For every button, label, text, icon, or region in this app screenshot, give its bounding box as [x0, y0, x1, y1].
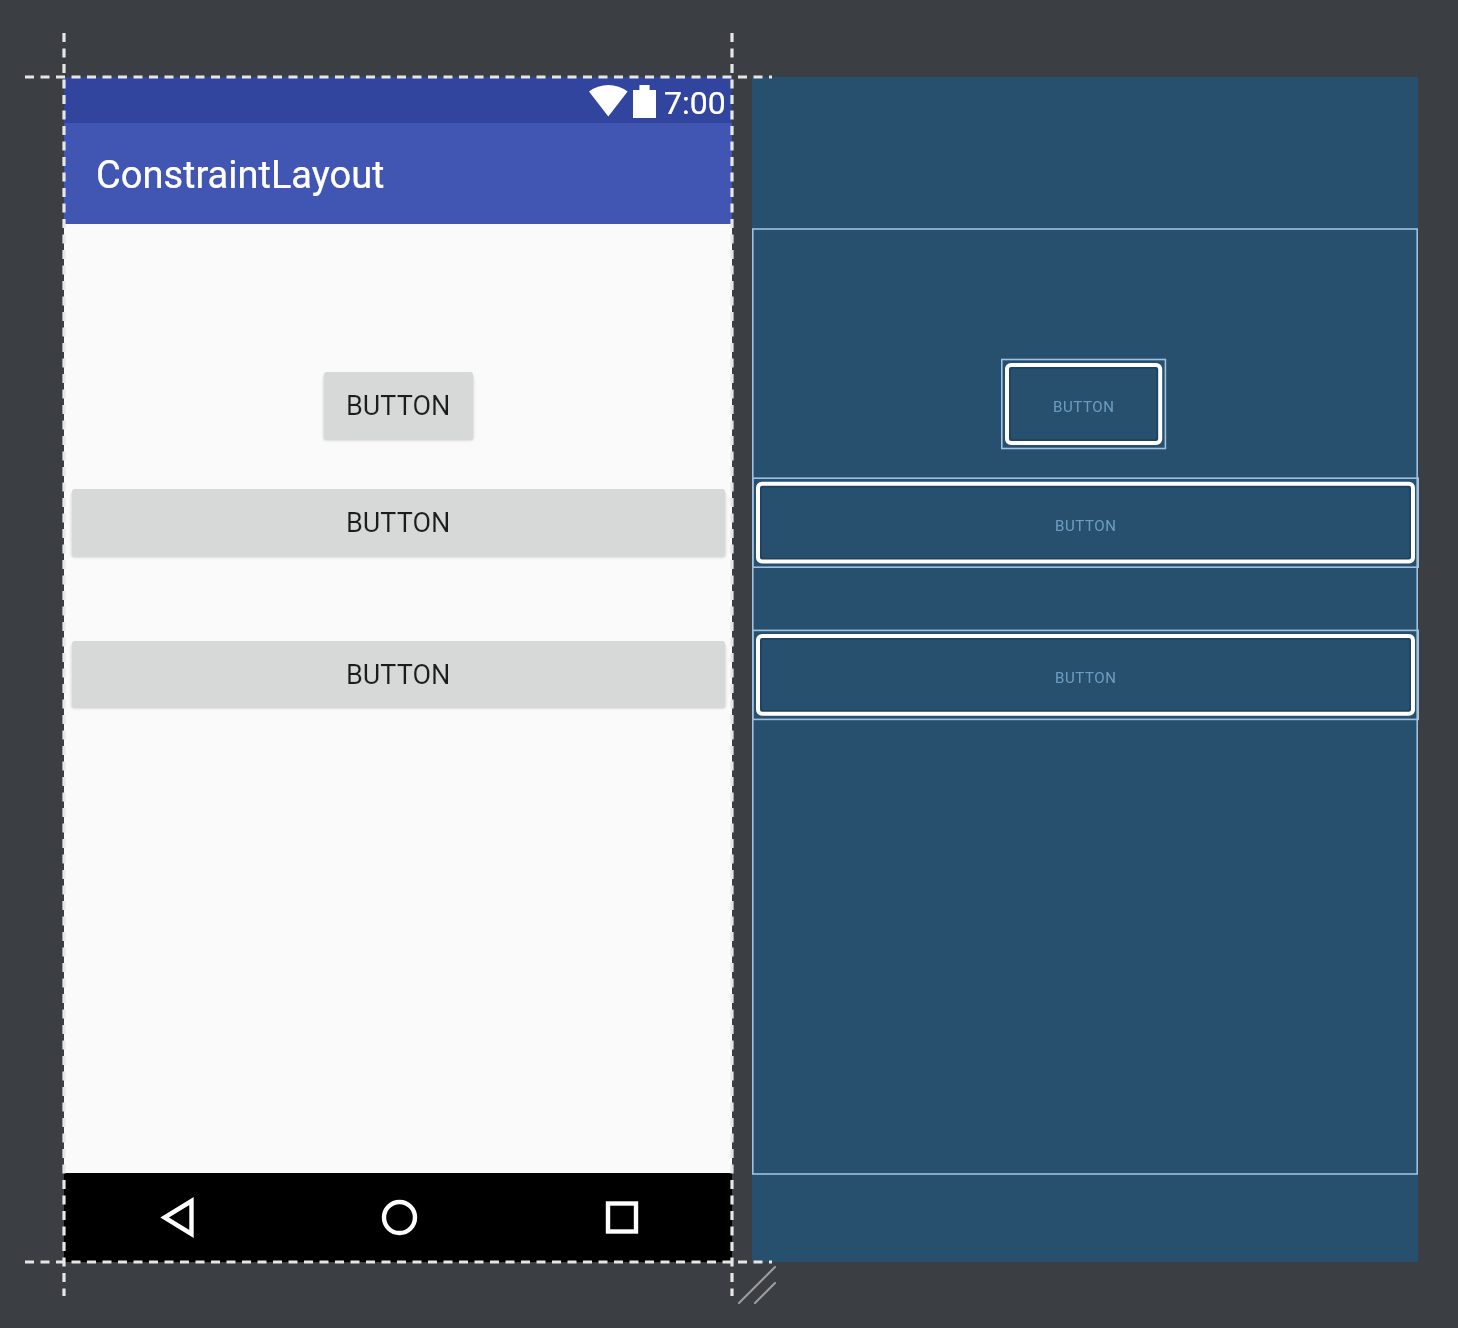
button[interactable]: Back [64, 1173, 286, 1262]
button[interactable]: BUTTON [324, 372, 473, 440]
button[interactable]: BUTTON [72, 489, 725, 557]
button[interactable]: BUTTON [72, 641, 725, 708]
staticText: BUTTON [346, 390, 451, 422]
staticText: BUTTON [346, 507, 451, 539]
button[interactable]: Home [286, 1173, 509, 1262]
staticText: 7:00 [664, 84, 726, 122]
staticText: BUTTON [1055, 517, 1117, 535]
button[interactable]: Recents [509, 1173, 732, 1262]
staticText: ConstraintLayout [96, 153, 385, 198]
staticText: BUTTON [346, 659, 451, 691]
staticText: BUTTON [1053, 398, 1115, 416]
button[interactable]: BUTTON [753, 633, 1418, 722]
staticText: BUTTON [1055, 669, 1117, 687]
button[interactable]: BUTTON [753, 481, 1418, 570]
button[interactable]: BUTTON [1002, 362, 1166, 451]
